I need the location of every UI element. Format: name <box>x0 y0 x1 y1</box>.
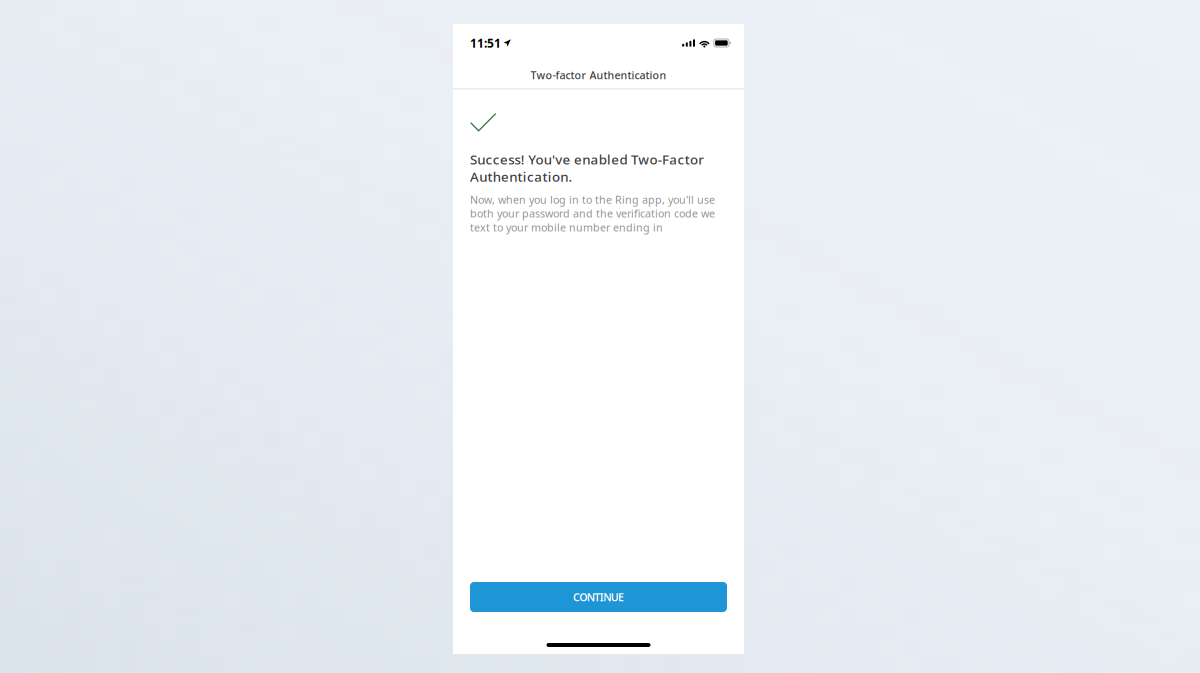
button[interactable]: CONTINUE <box>470 582 727 612</box>
staticText: Two-factor Authentication <box>530 68 666 82</box>
staticText: CONTINUE <box>573 590 624 604</box>
staticText: Success! You've enabled Two-Factor Authe… <box>470 150 704 185</box>
staticText: 11:51 <box>470 35 501 51</box>
staticText: Now, when you log in to the Ring app, yo… <box>470 192 715 234</box>
